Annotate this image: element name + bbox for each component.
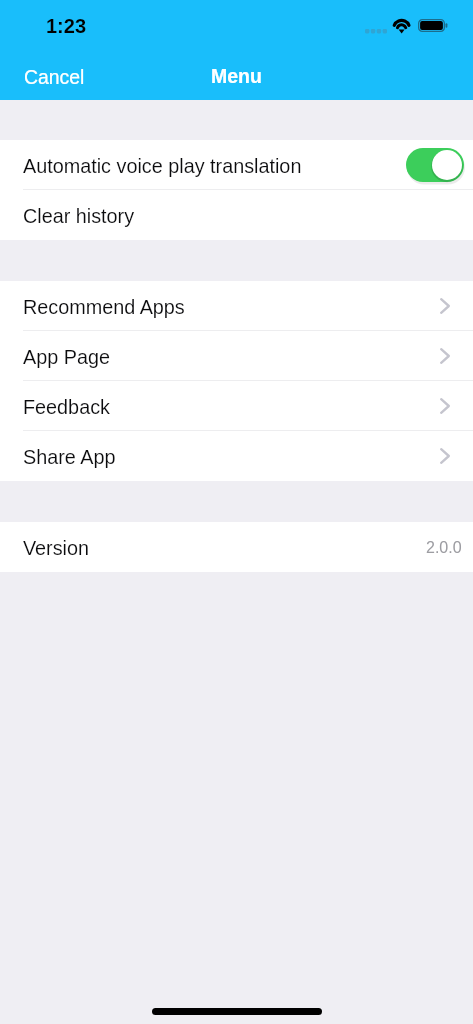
staticText: 2.0.0 <box>426 539 462 557</box>
button[interactable]: Recommend Apps <box>0 281 473 331</box>
staticText: Clear history <box>23 205 135 227</box>
staticText: Cancel <box>24 66 85 88</box>
staticText: Automatic voice play translation <box>23 155 302 177</box>
button[interactable]: Cancel <box>0 56 101 95</box>
staticText: Feedback <box>23 396 110 418</box>
staticText: App Page <box>23 346 110 368</box>
staticText: Recommend Apps <box>23 296 185 318</box>
button[interactable]: App Page <box>0 331 473 381</box>
staticText: Version <box>23 537 90 559</box>
staticText: 1:23 <box>46 15 87 37</box>
staticText: Menu <box>211 65 262 87</box>
button[interactable]: Automatic voice play translation <box>0 140 473 190</box>
button[interactable]: Clear history <box>0 190 473 240</box>
button[interactable]: Feedback <box>0 381 473 431</box>
staticText: Share App <box>23 446 116 468</box>
button[interactable]: Toggle automatic voice play translation <box>404 146 466 184</box>
button[interactable]: Share App <box>0 431 473 481</box>
